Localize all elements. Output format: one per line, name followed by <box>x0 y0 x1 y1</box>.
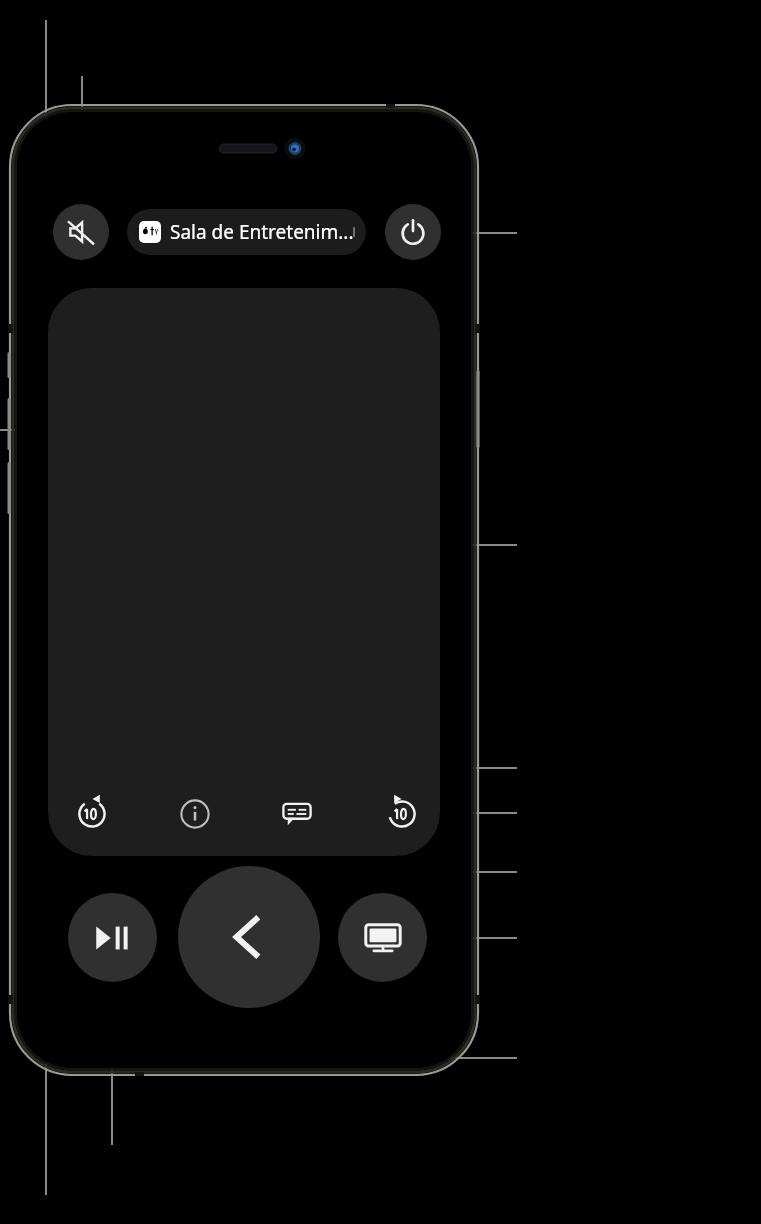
button[interactable]: Play or pause <box>68 893 157 982</box>
button[interactable]: Subtitles <box>275 792 319 836</box>
button[interactable]: Mute <box>53 204 109 260</box>
staticText: Sala de Entretenim... <box>170 219 354 245</box>
button[interactable]: Skip back 10 seconds <box>70 792 114 836</box>
button[interactable]: Back <box>178 866 320 1008</box>
button[interactable]: Skip forward 10 seconds <box>380 792 424 836</box>
button[interactable]: Power <box>385 204 441 260</box>
button[interactable]: Sala de Entretenim... <box>127 209 366 255</box>
button[interactable]: TV <box>338 893 427 982</box>
button[interactable]: Info <box>173 792 217 836</box>
button[interactable]: Touch surface <box>48 288 440 856</box>
